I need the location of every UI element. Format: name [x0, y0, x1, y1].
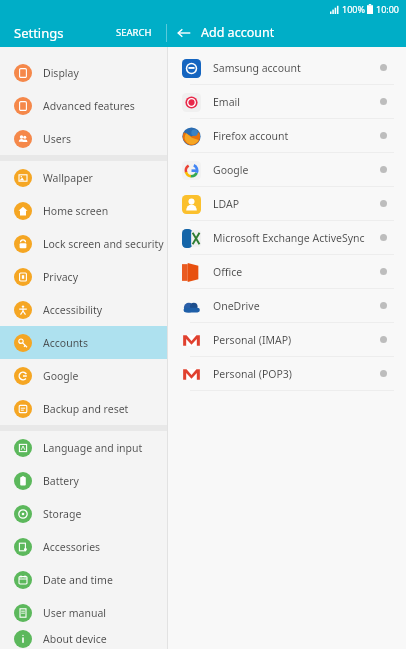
staticText: Accounts: [43, 336, 88, 350]
button[interactable]: OneDrive: [168, 289, 406, 322]
staticText: Wallpaper: [43, 171, 93, 185]
staticText: Lock screen and security: [43, 237, 164, 251]
button[interactable]: Battery: [0, 464, 167, 497]
button[interactable]: Date and time: [0, 563, 167, 596]
button[interactable]: Lock screen and security: [0, 227, 167, 260]
staticText: Samsung account: [213, 61, 301, 75]
button[interactable]: Firefox account: [168, 119, 406, 152]
button[interactable]: Samsung account: [168, 51, 406, 84]
staticText: Settings: [14, 24, 64, 42]
staticText: Backup and reset: [43, 402, 129, 416]
staticText: Email: [213, 95, 240, 109]
staticText: Personal (IMAP): [213, 333, 292, 347]
button[interactable]: Accessories: [0, 530, 167, 563]
button[interactable]: Home screen: [0, 194, 167, 227]
button[interactable]: User manual: [0, 596, 167, 629]
staticText: Google: [213, 163, 249, 177]
button[interactable]: Display: [0, 56, 167, 89]
staticText: Accessibility: [43, 303, 103, 317]
staticText: Storage: [43, 507, 82, 521]
staticText: Display: [43, 66, 79, 80]
staticText: Office: [213, 265, 243, 279]
button[interactable]: About device: [0, 629, 167, 649]
button[interactable]: Personal (IMAP): [168, 323, 406, 356]
staticText: Personal (POP3): [213, 367, 293, 381]
staticText: 10:00: [376, 3, 400, 15]
staticText: User manual: [43, 606, 106, 620]
staticText: LDAP: [213, 197, 240, 211]
button[interactable]: Advanced features: [0, 89, 167, 122]
staticText: Date and time: [43, 573, 113, 587]
staticText: OneDrive: [213, 299, 260, 313]
button[interactable]: Privacy: [0, 260, 167, 293]
staticText: Advanced features: [43, 99, 135, 113]
button[interactable]: Google: [0, 359, 167, 392]
staticText: Add account: [201, 24, 275, 41]
button[interactable]: Backup and reset: [0, 392, 167, 425]
staticText: Battery: [43, 474, 79, 488]
staticText: Users: [43, 132, 71, 146]
button[interactable]: LDAP: [168, 187, 406, 220]
button[interactable]: Google: [168, 153, 406, 186]
button[interactable]: Settings: [14, 24, 64, 42]
button[interactable]: Email: [168, 85, 406, 118]
button[interactable]: Accounts: [0, 326, 167, 359]
button[interactable]: Microsoft Exchange ActiveSync: [168, 221, 406, 254]
staticText: Home screen: [43, 204, 109, 218]
button[interactable]: Wallpaper: [0, 161, 167, 194]
staticText: 100%: [342, 3, 365, 15]
button[interactable]: Office: [168, 255, 406, 288]
button[interactable]: Back: [167, 18, 201, 47]
button[interactable]: Users: [0, 122, 167, 155]
staticText: Microsoft Exchange ActiveSync: [213, 231, 365, 245]
button[interactable]: Storage: [0, 497, 167, 530]
button[interactable]: Personal (POP3): [168, 357, 406, 390]
staticText: SEARCH: [116, 26, 152, 39]
button[interactable]: SEARCH: [116, 26, 152, 39]
button[interactable]: Accessibility: [0, 293, 167, 326]
staticText: Accessories: [43, 540, 101, 554]
button[interactable]: Language and input: [0, 431, 167, 464]
staticText: Firefox account: [213, 129, 289, 143]
staticText: Privacy: [43, 270, 79, 284]
staticText: Google: [43, 369, 79, 383]
staticText: Language and input: [43, 441, 143, 455]
staticText: About device: [43, 632, 107, 646]
